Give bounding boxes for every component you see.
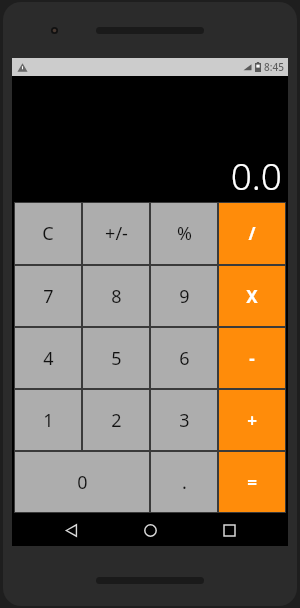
staticText: 0.0 (230, 150, 282, 200)
button[interactable]: 3 (151, 390, 217, 450)
staticText: 5 (111, 346, 122, 371)
button[interactable]: 5 (83, 328, 149, 388)
button[interactable]: % (151, 203, 217, 264)
button[interactable]: - (219, 328, 285, 388)
staticText: 6 (179, 346, 190, 371)
staticText: C (42, 221, 54, 246)
button[interactable]: 7 (15, 266, 81, 326)
button[interactable]: 8 (83, 266, 149, 326)
button[interactable]: 2 (83, 390, 149, 450)
button[interactable]: Recent apps (209, 514, 249, 546)
staticText: 3 (179, 408, 190, 433)
staticText: = (247, 471, 257, 494)
staticText: 8:45 (264, 60, 284, 74)
staticText: . (182, 470, 187, 495)
staticText: 2 (111, 408, 122, 433)
staticText: 8 (111, 284, 122, 309)
button[interactable]: 4 (15, 328, 81, 388)
button[interactable]: + (219, 390, 285, 450)
button[interactable]: / (219, 203, 285, 264)
button[interactable]: +/- (83, 203, 149, 264)
button[interactable]: Back (51, 514, 91, 546)
staticText: 0 (77, 470, 88, 495)
staticText: 9 (179, 284, 190, 309)
staticText: + (247, 409, 257, 432)
staticText: X (246, 285, 258, 308)
staticText: 7 (43, 284, 54, 309)
button[interactable]: 9 (151, 266, 217, 326)
button[interactable]: = (219, 452, 285, 512)
button[interactable]: 6 (151, 328, 217, 388)
staticText: +/- (105, 221, 128, 246)
button[interactable]: X (219, 266, 285, 326)
button[interactable]: 1 (15, 390, 81, 450)
staticText: 4 (43, 346, 54, 371)
button[interactable]: Home (130, 514, 170, 546)
staticText: % (177, 221, 192, 246)
button[interactable]: . (151, 452, 217, 512)
staticText: - (249, 347, 255, 370)
button[interactable]: 0 (15, 452, 149, 512)
staticText: / (248, 222, 256, 245)
staticText: 1 (43, 408, 54, 433)
button[interactable]: C (15, 203, 81, 264)
